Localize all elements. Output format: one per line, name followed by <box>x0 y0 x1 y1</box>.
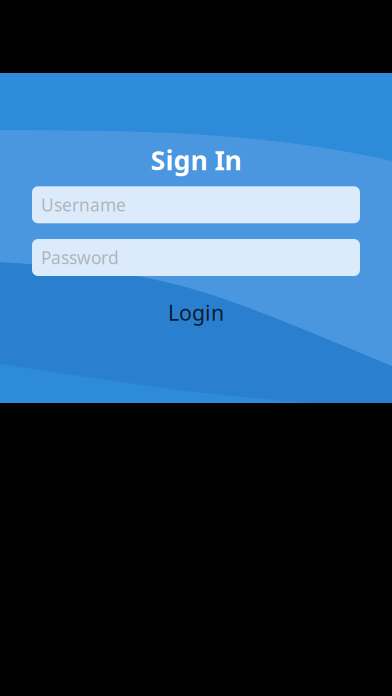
staticText: Password <box>41 246 119 269</box>
button[interactable]: Password <box>32 239 360 276</box>
staticText: Login <box>168 298 224 327</box>
staticText: Sign In <box>150 142 241 177</box>
staticText: Username <box>41 193 126 216</box>
button[interactable]: Login <box>136 294 256 331</box>
button[interactable]: Username <box>32 186 360 223</box>
